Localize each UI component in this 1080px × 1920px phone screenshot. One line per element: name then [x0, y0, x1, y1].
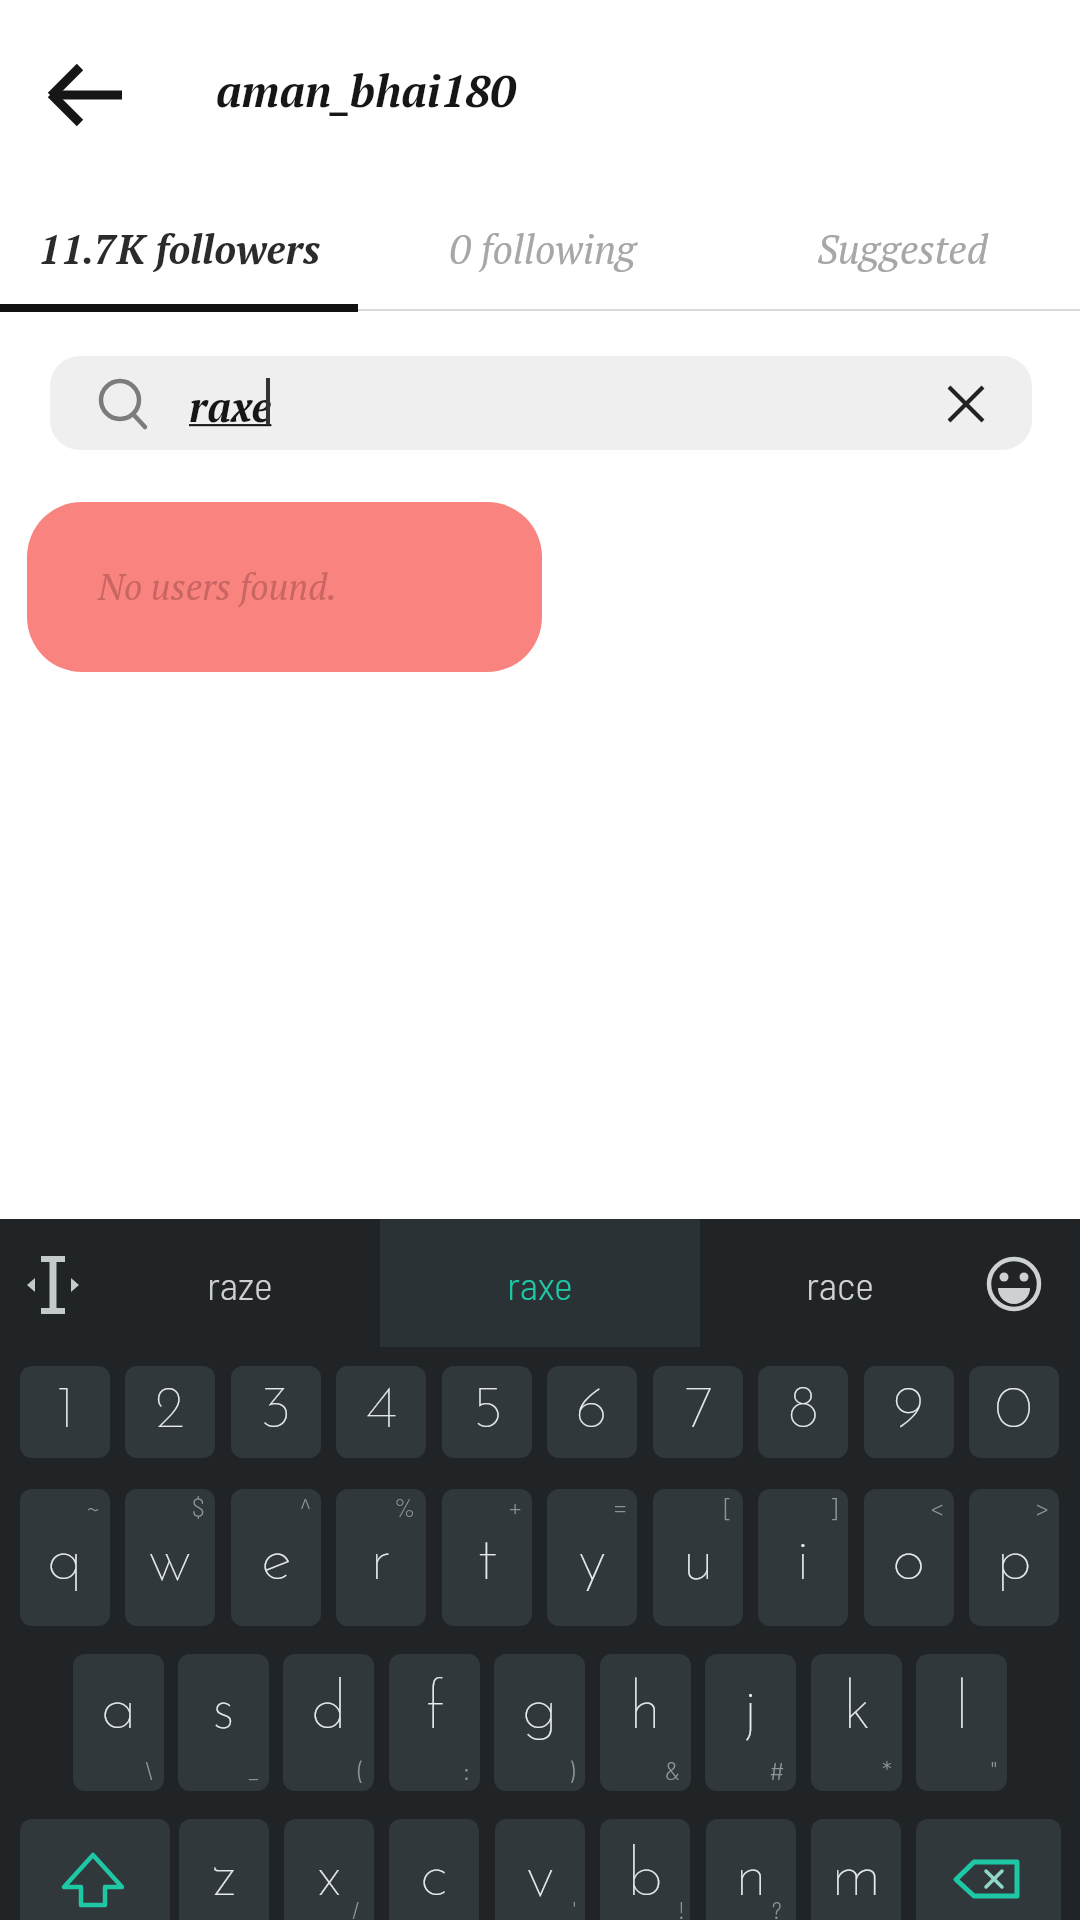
button[interactable]: n [706, 1819, 796, 1920]
button[interactable]: t [442, 1489, 532, 1626]
staticText: race [806, 1260, 874, 1308]
button[interactable]: Suggested [752, 218, 1052, 278]
staticText: " [991, 1754, 997, 1785]
button[interactable] [20, 1819, 170, 1920]
staticText: u [682, 1529, 715, 1595]
staticText: [ [724, 1491, 733, 1522]
staticText: ' [573, 1895, 576, 1920]
staticText: 11.7K followers [38, 222, 321, 275]
staticText: aman_bhai180 [216, 60, 516, 120]
button[interactable]: o [864, 1489, 954, 1626]
staticText: No users found. [98, 563, 338, 611]
button[interactable]: 8 [758, 1366, 848, 1458]
button[interactable]: q [20, 1489, 110, 1626]
button[interactable]: p [969, 1489, 1059, 1626]
staticText: ] [829, 1491, 838, 1522]
staticText: o [892, 1529, 926, 1595]
button[interactable] [380, 1219, 700, 1347]
staticText: w [148, 1529, 192, 1595]
button[interactable]: raze [140, 1249, 340, 1319]
button[interactable]: 2 [125, 1366, 215, 1458]
staticText: : [463, 1754, 470, 1785]
staticText: 6 [576, 1382, 608, 1442]
button[interactable] [24, 1252, 80, 1318]
staticText: < [931, 1491, 944, 1522]
button[interactable]: u [653, 1489, 743, 1626]
staticText: * [882, 1754, 892, 1785]
button[interactable]: 7 [653, 1366, 743, 1458]
staticText: z [212, 1845, 237, 1911]
staticText: s [212, 1678, 235, 1744]
button[interactable] [936, 374, 996, 434]
button[interactable]: f [389, 1654, 480, 1791]
button[interactable]: 0 following [393, 218, 693, 278]
button[interactable]: y [547, 1489, 637, 1626]
button[interactable]: 9 [864, 1366, 954, 1458]
button[interactable] [50, 356, 1032, 450]
staticText: l [955, 1678, 969, 1744]
staticText: q [47, 1529, 83, 1595]
button[interactable]: k [811, 1654, 902, 1791]
staticText: g [522, 1678, 558, 1744]
staticText: j [743, 1678, 758, 1744]
button[interactable] [30, 60, 140, 130]
staticText: ! [678, 1895, 685, 1920]
staticText: t [477, 1529, 498, 1595]
staticText: > [1036, 1491, 1049, 1522]
button[interactable]: b [600, 1819, 690, 1920]
staticText: k [843, 1678, 871, 1744]
staticText: 0 [995, 1382, 1033, 1442]
staticText: 2 [155, 1382, 185, 1442]
staticText: i [796, 1529, 810, 1595]
button[interactable]: r [336, 1489, 426, 1626]
button[interactable]: s [178, 1654, 269, 1791]
staticText: v [526, 1845, 555, 1911]
staticText: ( [358, 1754, 364, 1785]
button[interactable]: 11.7K followers [29, 218, 329, 278]
button[interactable]: 4 [336, 1366, 426, 1458]
button[interactable]: 3 [231, 1366, 321, 1458]
staticText: _ [248, 1754, 259, 1785]
staticText: 5 [471, 1382, 504, 1442]
button[interactable]: g [494, 1654, 585, 1791]
button[interactable]: raxe [440, 1249, 640, 1319]
button[interactable]: x [284, 1819, 374, 1920]
staticText: 1 [56, 1382, 75, 1442]
staticText: x [317, 1845, 342, 1911]
button[interactable]: 6 [547, 1366, 637, 1458]
staticText: b [627, 1845, 663, 1911]
staticText: \ [144, 1754, 154, 1785]
button[interactable]: l [916, 1654, 1007, 1791]
button[interactable]: race [740, 1249, 940, 1319]
button[interactable]: c [389, 1819, 479, 1920]
button[interactable]: z [179, 1819, 269, 1920]
button[interactable]: w [125, 1489, 215, 1626]
staticText: d [311, 1678, 347, 1744]
staticText: # [769, 1754, 786, 1785]
button[interactable]: m [811, 1819, 901, 1920]
button[interactable]: e [231, 1489, 321, 1626]
button[interactable]: d [283, 1654, 374, 1791]
button[interactable]: 0 [969, 1366, 1059, 1458]
staticText: p [996, 1529, 1032, 1595]
staticText: % [394, 1491, 416, 1522]
button[interactable]: 1 [20, 1366, 110, 1458]
button[interactable] [984, 1254, 1044, 1314]
button[interactable]: j [705, 1654, 796, 1791]
staticText: r [370, 1529, 392, 1595]
button[interactable]: a [73, 1654, 164, 1791]
staticText: e [261, 1529, 292, 1595]
button[interactable] [916, 1819, 1061, 1920]
staticText: raze [207, 1260, 273, 1308]
button[interactable]: i [758, 1489, 848, 1626]
staticText: / [352, 1895, 361, 1920]
staticText: raxe [189, 378, 272, 434]
staticText: ) [569, 1754, 575, 1785]
staticText: h [629, 1678, 662, 1744]
button[interactable]: 5 [442, 1366, 532, 1458]
staticText: 4 [366, 1382, 397, 1442]
button[interactable]: v [495, 1819, 585, 1920]
button[interactable]: No users found. [27, 502, 542, 672]
staticText: a [101, 1678, 137, 1744]
button[interactable]: h [600, 1654, 691, 1791]
